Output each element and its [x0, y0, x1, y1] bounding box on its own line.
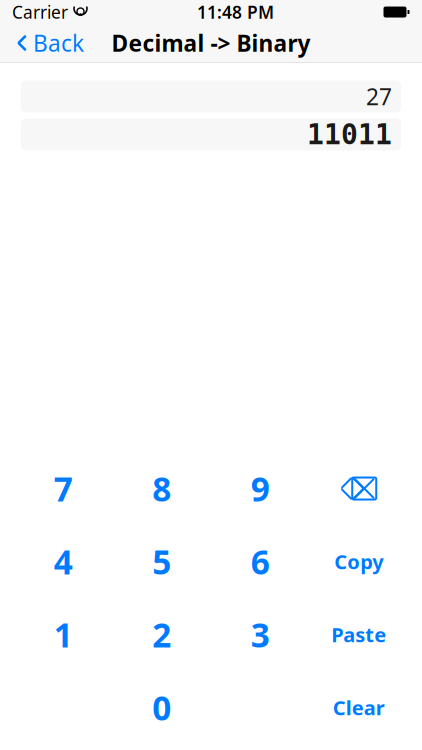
button[interactable]: 9: [211, 452, 309, 525]
staticText: 0: [152, 685, 171, 730]
button[interactable]: 1: [14, 598, 112, 671]
button[interactable]: Paste: [309, 598, 408, 671]
button[interactable]: 7: [14, 452, 112, 525]
staticText: Paste: [331, 621, 386, 648]
staticText: 9: [251, 466, 270, 511]
button[interactable]: 4: [14, 525, 112, 598]
staticText: 8: [152, 466, 171, 511]
staticText: 5: [152, 539, 171, 584]
staticText: Back: [33, 28, 84, 58]
button[interactable]: 8: [112, 452, 211, 525]
button[interactable]: 6: [211, 525, 309, 598]
staticText: 11011: [307, 119, 392, 150]
staticText: Copy: [334, 548, 383, 575]
staticText: 4: [54, 539, 73, 584]
staticText: 7: [54, 466, 73, 511]
button[interactable]: Copy: [309, 525, 408, 598]
button[interactable]: Backspace: [309, 452, 408, 525]
button[interactable]: 2: [112, 598, 211, 671]
staticText: 1: [54, 612, 73, 657]
button[interactable]: Back: [8, 22, 92, 64]
button[interactable]: 0: [112, 671, 211, 744]
staticText: 6: [251, 539, 270, 584]
staticText: 3: [251, 612, 270, 657]
staticText: Decimal -> Binary: [111, 28, 310, 58]
staticText: Clear: [333, 694, 385, 721]
staticText: 27: [366, 81, 392, 111]
staticText: Carrier: [12, 0, 68, 23]
staticText: 2: [152, 612, 171, 657]
button[interactable]: 5: [112, 525, 211, 598]
staticText: 11:48 PM: [197, 0, 274, 23]
button[interactable]: 3: [211, 598, 309, 671]
button[interactable]: Clear: [309, 671, 408, 744]
